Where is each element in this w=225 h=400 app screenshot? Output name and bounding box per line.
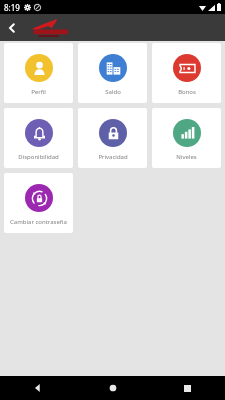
button[interactable]: Cambiar contraseña (4, 173, 73, 233)
button[interactable]: Back (0, 16, 24, 40)
staticText: Perfil (31, 88, 46, 96)
staticText: Niveles (176, 153, 197, 161)
button[interactable]: Privacidad (78, 108, 147, 168)
staticText: 8:19 (4, 2, 20, 13)
staticText: Cambiar contraseña (10, 218, 67, 226)
staticText: Bonos (178, 88, 196, 96)
button[interactable]: Recent apps (150, 376, 225, 400)
button[interactable]: Perfil (4, 43, 73, 103)
button[interactable]: Home (75, 376, 150, 400)
staticText: Disponibilidad (18, 153, 59, 161)
button[interactable]: Saldo (78, 43, 147, 103)
button[interactable]: Disponibilidad (4, 108, 73, 168)
staticText: Saldo (105, 88, 121, 96)
button[interactable]: Niveles (152, 108, 221, 168)
button[interactable]: Bonos (152, 43, 221, 103)
button[interactable]: Back (0, 376, 75, 400)
staticText: Privacidad (98, 153, 128, 161)
